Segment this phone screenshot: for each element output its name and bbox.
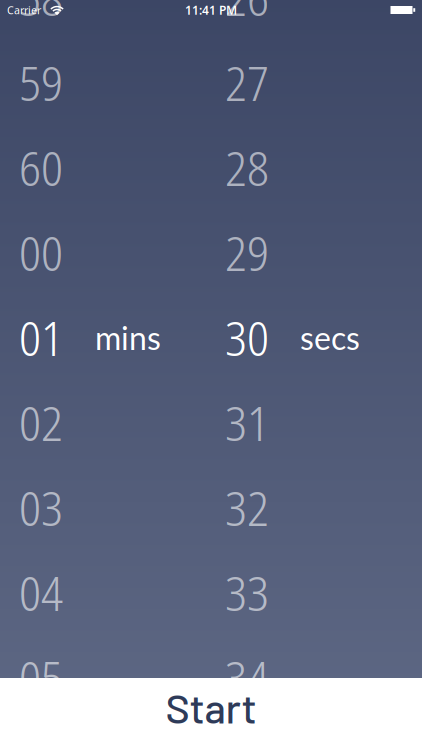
staticText: 04 <box>19 560 63 625</box>
staticText: 28 <box>225 135 269 200</box>
staticText: 29 <box>225 220 269 285</box>
staticText: 32 <box>225 475 269 540</box>
button[interactable]: Minutes picker <box>10 0 200 750</box>
staticText: Start <box>165 682 256 732</box>
staticText: Carrier <box>7 3 41 17</box>
staticText: secs <box>300 318 360 357</box>
staticText: 58 <box>19 0 63 30</box>
staticText: 11:41 PM <box>185 2 237 18</box>
staticText: 00 <box>19 220 63 285</box>
staticText: mins <box>95 318 161 357</box>
staticText: 02 <box>19 390 63 455</box>
staticText: 60 <box>19 135 63 200</box>
staticText: 30 <box>225 305 269 370</box>
button[interactable]: Seconds picker <box>216 0 406 750</box>
staticText: 34 <box>225 645 269 710</box>
button[interactable]: Start <box>0 678 422 750</box>
staticText: 31 <box>225 390 269 455</box>
staticText: 27 <box>225 50 269 115</box>
staticText: 03 <box>19 475 63 540</box>
staticText: 26 <box>225 0 269 30</box>
staticText: 59 <box>19 50 63 115</box>
staticText: 05 <box>19 645 63 710</box>
staticText: 01 <box>19 305 63 370</box>
staticText: 33 <box>225 560 269 625</box>
